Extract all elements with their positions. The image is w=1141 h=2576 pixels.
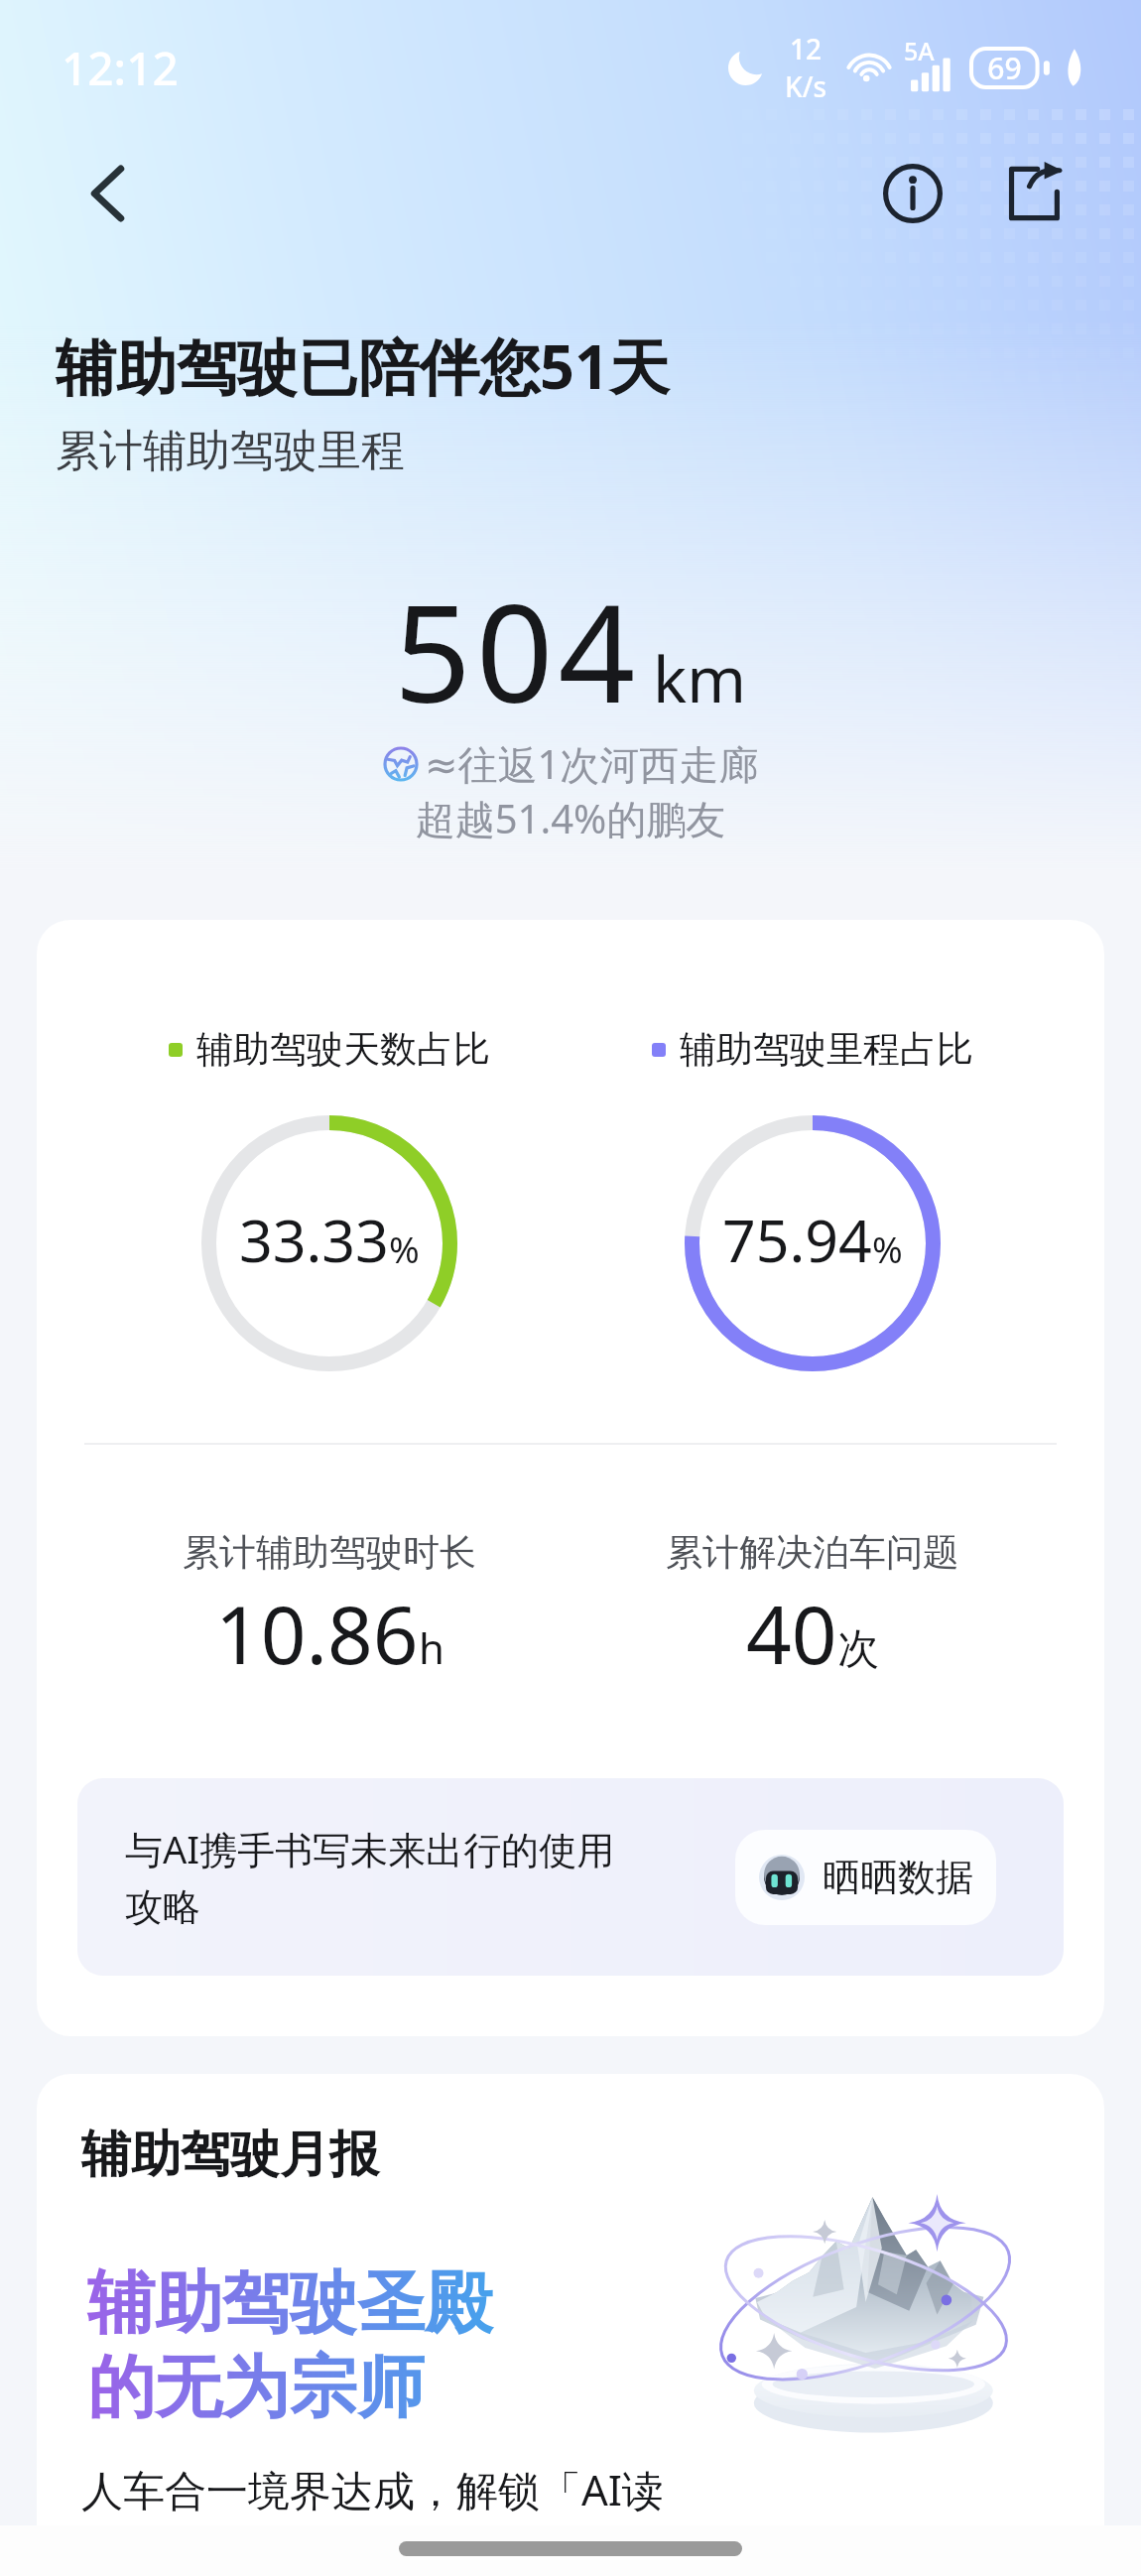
staticText: 累计辅助驾驶时长	[183, 1529, 476, 1576]
staticText: 辅助驾驶月报	[81, 2124, 379, 2186]
staticText: 累计辅助驾驶里程	[56, 424, 405, 478]
button[interactable]: 与AI携手书写未来出行的使用 攻略	[77, 1778, 1064, 1976]
staticText: %	[872, 1224, 903, 1273]
staticText: 与AI携手书写未来出行的使用 攻略	[125, 1823, 735, 1932]
staticText: 人车合一境界达成，解锁「AI读	[81, 2461, 665, 2517]
staticText: 超越51.4%的鹏友	[0, 791, 1141, 845]
staticText: km	[653, 635, 747, 721]
staticText: 辅助驾驶天数占比	[196, 1026, 490, 1073]
staticText: h	[419, 1619, 444, 1676]
button[interactable]: Share	[987, 148, 1078, 239]
button[interactable]: 晒晒数据	[735, 1830, 996, 1925]
staticText: 40	[746, 1579, 837, 1687]
staticText: 辅助驾驶圣殿 的无为宗师	[87, 2261, 492, 2431]
staticText: 69	[969, 48, 1040, 88]
staticText: 5A	[904, 34, 935, 67]
staticText: ≈往返1次河西走廊	[425, 736, 759, 791]
staticText: 504	[394, 559, 641, 742]
staticText: %	[389, 1224, 420, 1273]
staticText: 12:12	[62, 37, 179, 99]
staticText: 10.86	[215, 1579, 419, 1687]
staticText: 晒晒数据	[823, 1854, 973, 1901]
staticText: 辅助驾驶已陪伴您51天	[56, 324, 670, 407]
staticText: K/s	[785, 67, 827, 105]
button[interactable]: Info	[867, 148, 958, 239]
staticText: 次	[837, 1623, 879, 1676]
staticText: 75.94	[722, 1200, 872, 1279]
staticText: 12	[790, 30, 823, 67]
button[interactable]: 辅助驾驶月报	[37, 2074, 1104, 2576]
staticText: 辅助驾驶里程占比	[680, 1026, 973, 1073]
button[interactable]: Back	[65, 152, 149, 235]
staticText: 33.33	[239, 1200, 389, 1279]
staticText: 累计解决泊车问题	[666, 1529, 959, 1576]
